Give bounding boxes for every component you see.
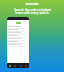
button[interactable] xyxy=(7,35,29,38)
staticText: Search the web and plant xyxy=(14,8,51,12)
button[interactable] xyxy=(7,26,29,29)
button[interactable] xyxy=(16,22,21,24)
staticText: trees with every search xyxy=(15,11,49,15)
button[interactable] xyxy=(7,44,29,47)
button[interactable] xyxy=(7,41,29,44)
staticText: ecosia xyxy=(25,1,39,7)
button[interactable] xyxy=(7,32,29,35)
button[interactable] xyxy=(7,38,29,41)
button[interactable] xyxy=(7,29,29,32)
